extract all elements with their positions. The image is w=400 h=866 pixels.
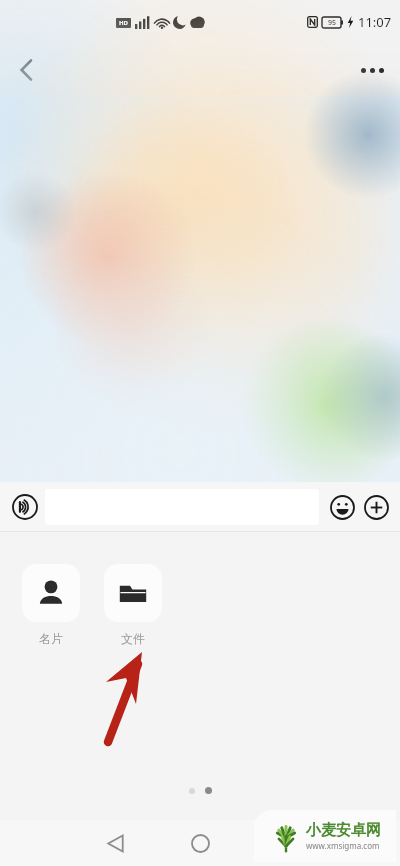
staticText: 11:07 xyxy=(358,13,392,31)
button[interactable]: More options xyxy=(344,44,400,96)
button[interactable]: Back xyxy=(92,820,138,866)
staticText: www.xmsigma.com xyxy=(306,840,380,851)
staticText: 文件 xyxy=(121,631,145,646)
staticText: HD xyxy=(119,19,128,27)
staticText: 名片 xyxy=(39,631,63,646)
staticText: 小麦安卓网 xyxy=(306,821,381,840)
staticText: 95 xyxy=(328,18,337,28)
button[interactable]: Home xyxy=(177,820,223,866)
button[interactable]: Voice input xyxy=(7,489,43,525)
button[interactable]: 名片 xyxy=(22,564,80,646)
button[interactable]: Emoji xyxy=(325,490,359,524)
button[interactable]: 文件 xyxy=(104,564,162,646)
button[interactable]: Back xyxy=(0,44,52,96)
button[interactable]: More functions xyxy=(359,490,393,524)
